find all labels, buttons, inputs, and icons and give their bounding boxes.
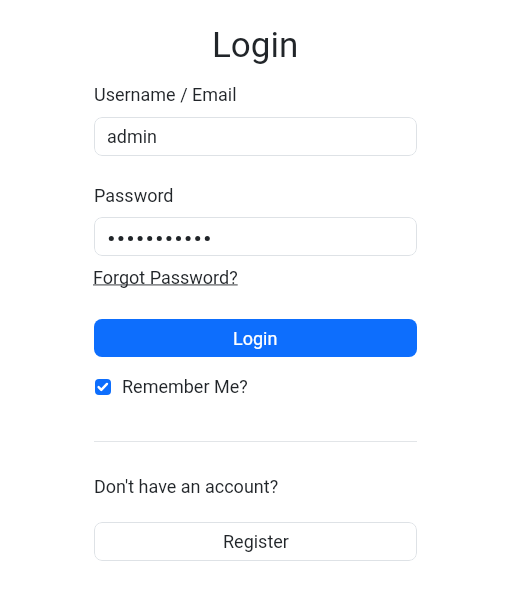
button[interactable] xyxy=(94,217,417,256)
staticText: Login xyxy=(233,328,278,349)
button[interactable]: Remember Me? xyxy=(95,376,248,397)
staticText: Password xyxy=(94,185,174,206)
button[interactable]: Register xyxy=(94,522,417,561)
staticText: Register xyxy=(223,531,289,552)
staticText: Remember Me? xyxy=(122,376,248,397)
staticText: Username / Email xyxy=(94,84,237,105)
button[interactable]: Forgot Password? xyxy=(93,267,238,288)
button[interactable]: Login xyxy=(94,319,417,357)
button[interactable]: admin xyxy=(94,117,417,156)
staticText: Don't have an account? xyxy=(94,476,279,497)
staticText: admin xyxy=(107,126,158,147)
staticText: Login xyxy=(212,25,299,66)
